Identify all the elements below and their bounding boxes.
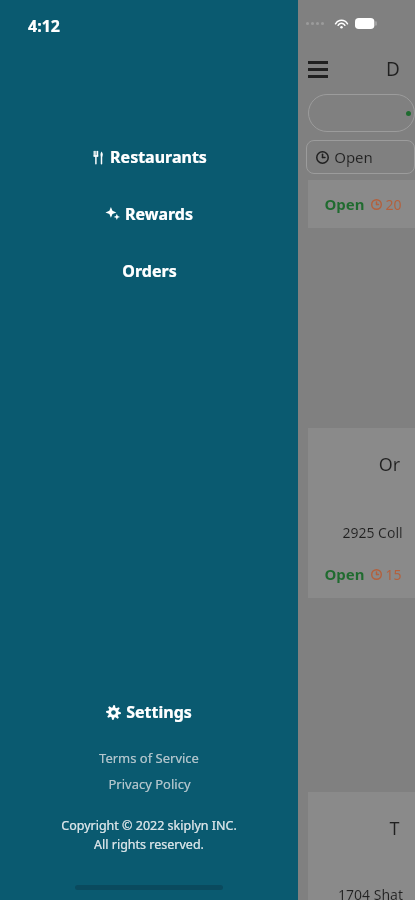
- button[interactable]: Terms of Service: [0, 747, 298, 769]
- staticText: Copyright © 2022 skiplyn INC.: [61, 817, 237, 834]
- staticText: Open: [324, 194, 365, 214]
- staticText: Terms of Service: [99, 749, 199, 767]
- button[interactable]: Restaurants: [0, 140, 298, 174]
- button[interactable]: Settings: [0, 695, 298, 729]
- staticText: 2925 Coll: [330, 523, 415, 542]
- staticText: All rights reserved.: [94, 836, 204, 853]
- staticText: 20: [385, 195, 402, 214]
- staticText: Restaurants: [110, 146, 207, 168]
- staticText: Orders: [122, 260, 177, 282]
- staticText: D: [386, 56, 400, 82]
- button[interactable]: Rewards: [0, 197, 298, 231]
- staticText: 4:12: [28, 15, 60, 37]
- staticText: 15: [385, 565, 402, 584]
- staticText: Or: [364, 452, 415, 477]
- staticText: T: [374, 816, 415, 841]
- staticText: Privacy Policy: [108, 775, 191, 793]
- staticText: 1704 Shat: [326, 885, 415, 900]
- button[interactable]: Orders: [0, 254, 298, 288]
- staticText: Open: [324, 564, 365, 584]
- staticText: Rewards: [125, 203, 193, 225]
- button[interactable]: Privacy Policy: [0, 773, 298, 795]
- staticText: Open: [334, 147, 373, 167]
- staticText: Settings: [126, 701, 192, 723]
- button[interactable]: Open: [306, 140, 415, 174]
